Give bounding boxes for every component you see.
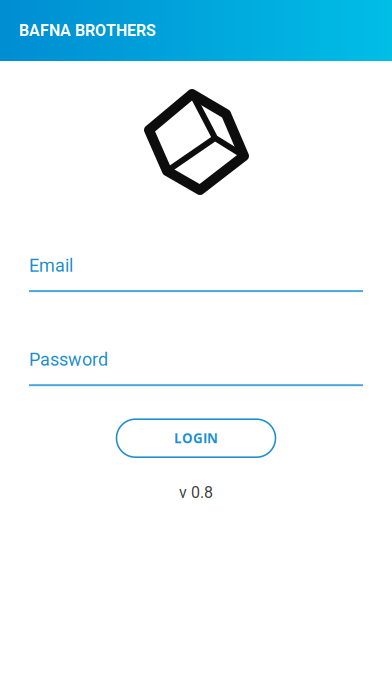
staticText: Email [29, 255, 73, 276]
button[interactable]: LOGIN [116, 419, 275, 457]
staticText: Password [29, 349, 108, 370]
staticText: v 0.8 [179, 483, 213, 502]
staticText: LOGIN [174, 429, 218, 447]
staticText: BAFNA BROTHERS [19, 21, 156, 40]
